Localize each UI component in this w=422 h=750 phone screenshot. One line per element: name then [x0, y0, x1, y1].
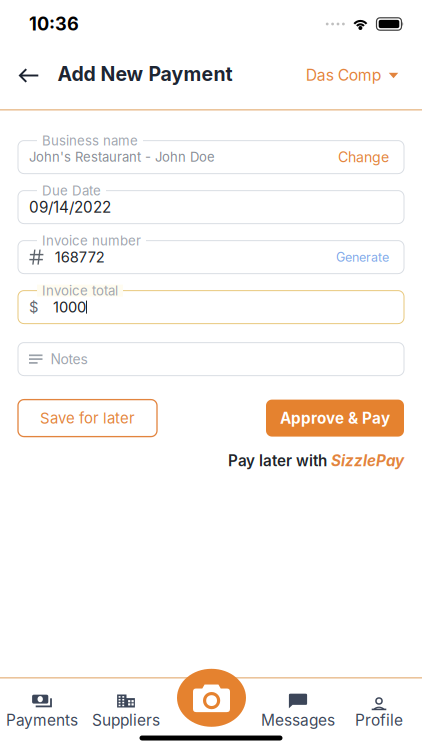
staticText: 09/14/2022 [29, 198, 111, 216]
staticText: Das Comp [306, 65, 382, 84]
button[interactable]: Approve & Pay [266, 400, 404, 437]
staticText: Approve & Pay [280, 409, 390, 427]
staticText: Business name [42, 133, 138, 149]
staticText: 1000 [53, 298, 86, 316]
staticText: Add New Payment [57, 62, 232, 86]
staticText: Invoice number [42, 233, 141, 249]
button[interactable]: Messages [252, 688, 344, 732]
button[interactable]: Das Comp [300, 55, 404, 95]
button[interactable]: Payments [0, 688, 88, 732]
staticText: 168772 [55, 248, 105, 266]
button[interactable]: Scan receipt [177, 669, 246, 727]
staticText: Change [338, 148, 389, 166]
staticText: Save for later [40, 409, 135, 427]
button[interactable]: Profile [333, 688, 422, 732]
staticText: Profile [355, 711, 403, 729]
staticText: Generate [336, 249, 389, 265]
button[interactable]: Add New Payment [57, 54, 232, 94]
button[interactable]: Generate [332, 242, 393, 272]
staticText: 10:36 [29, 13, 79, 35]
staticText: Due Date [42, 183, 101, 199]
staticText: Notes [50, 351, 87, 367]
button[interactable]: Change [334, 142, 393, 172]
staticText: Messages [261, 711, 335, 729]
staticText: Suppliers [92, 711, 160, 729]
staticText: $ [29, 298, 38, 316]
staticText: John's Restaurant - John Doe [29, 149, 215, 165]
button[interactable]: Save for later [18, 400, 157, 437]
staticText: Pay later with [228, 452, 327, 470]
staticText: Payments [6, 711, 78, 729]
staticText: SizzlePay [331, 452, 404, 470]
staticText: Invoice total [42, 283, 118, 299]
button[interactable]: Suppliers [80, 688, 172, 732]
button[interactable]: Back [8, 55, 48, 95]
